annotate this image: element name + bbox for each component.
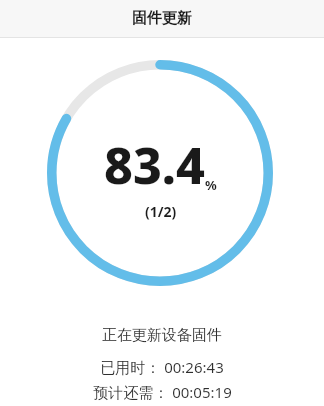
staticText: 固件更新 (132, 9, 192, 28)
staticText: 预计还需： 00:05:19 (93, 382, 232, 402)
staticText: 正在更新设备固件 (102, 326, 222, 345)
staticText: 已用时： 00:26:43 (100, 357, 224, 377)
staticText: (1/2) (145, 202, 177, 221)
staticText: % (205, 176, 217, 194)
staticText: 83.4 (104, 131, 205, 199)
